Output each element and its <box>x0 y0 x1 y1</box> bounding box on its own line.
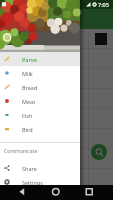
button[interactable]: Settings <box>0 175 80 189</box>
button[interactable]: Bird <box>0 122 80 136</box>
staticText: 7:05 <box>98 1 109 8</box>
button[interactable]: Meat <box>0 94 80 108</box>
button[interactable]: Search <box>91 144 107 160</box>
button[interactable]: Milk <box>0 66 80 80</box>
staticText: Meat <box>22 98 36 105</box>
staticText: Share <box>22 165 37 172</box>
staticText: Milk <box>22 70 33 77</box>
staticText: Fish <box>22 112 33 119</box>
staticText: Settings <box>22 179 43 186</box>
staticText: Parve <box>22 56 37 63</box>
button[interactable]: Share <box>0 161 80 175</box>
button[interactable]: Parve <box>0 52 80 66</box>
staticText: Bird <box>22 126 33 133</box>
staticText: Bread <box>22 84 38 91</box>
button[interactable]: Fish <box>0 108 80 122</box>
button[interactable]: Bread <box>0 80 80 94</box>
staticText: Communicate <box>4 148 38 155</box>
